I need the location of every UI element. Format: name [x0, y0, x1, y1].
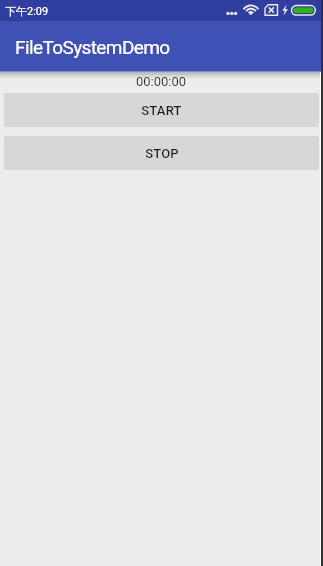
button[interactable]: STOP: [4, 136, 319, 170]
staticText: STOP: [145, 146, 179, 161]
staticText: 00:00:00: [136, 74, 187, 89]
staticText: START: [141, 103, 182, 118]
other: Status: wifi, no SIM, charging, battery …: [0, 0, 323, 21]
staticText: FileToSystemDemo: [15, 36, 170, 58]
button[interactable]: START: [4, 93, 319, 127]
staticText: 下午2:09: [5, 4, 49, 18]
